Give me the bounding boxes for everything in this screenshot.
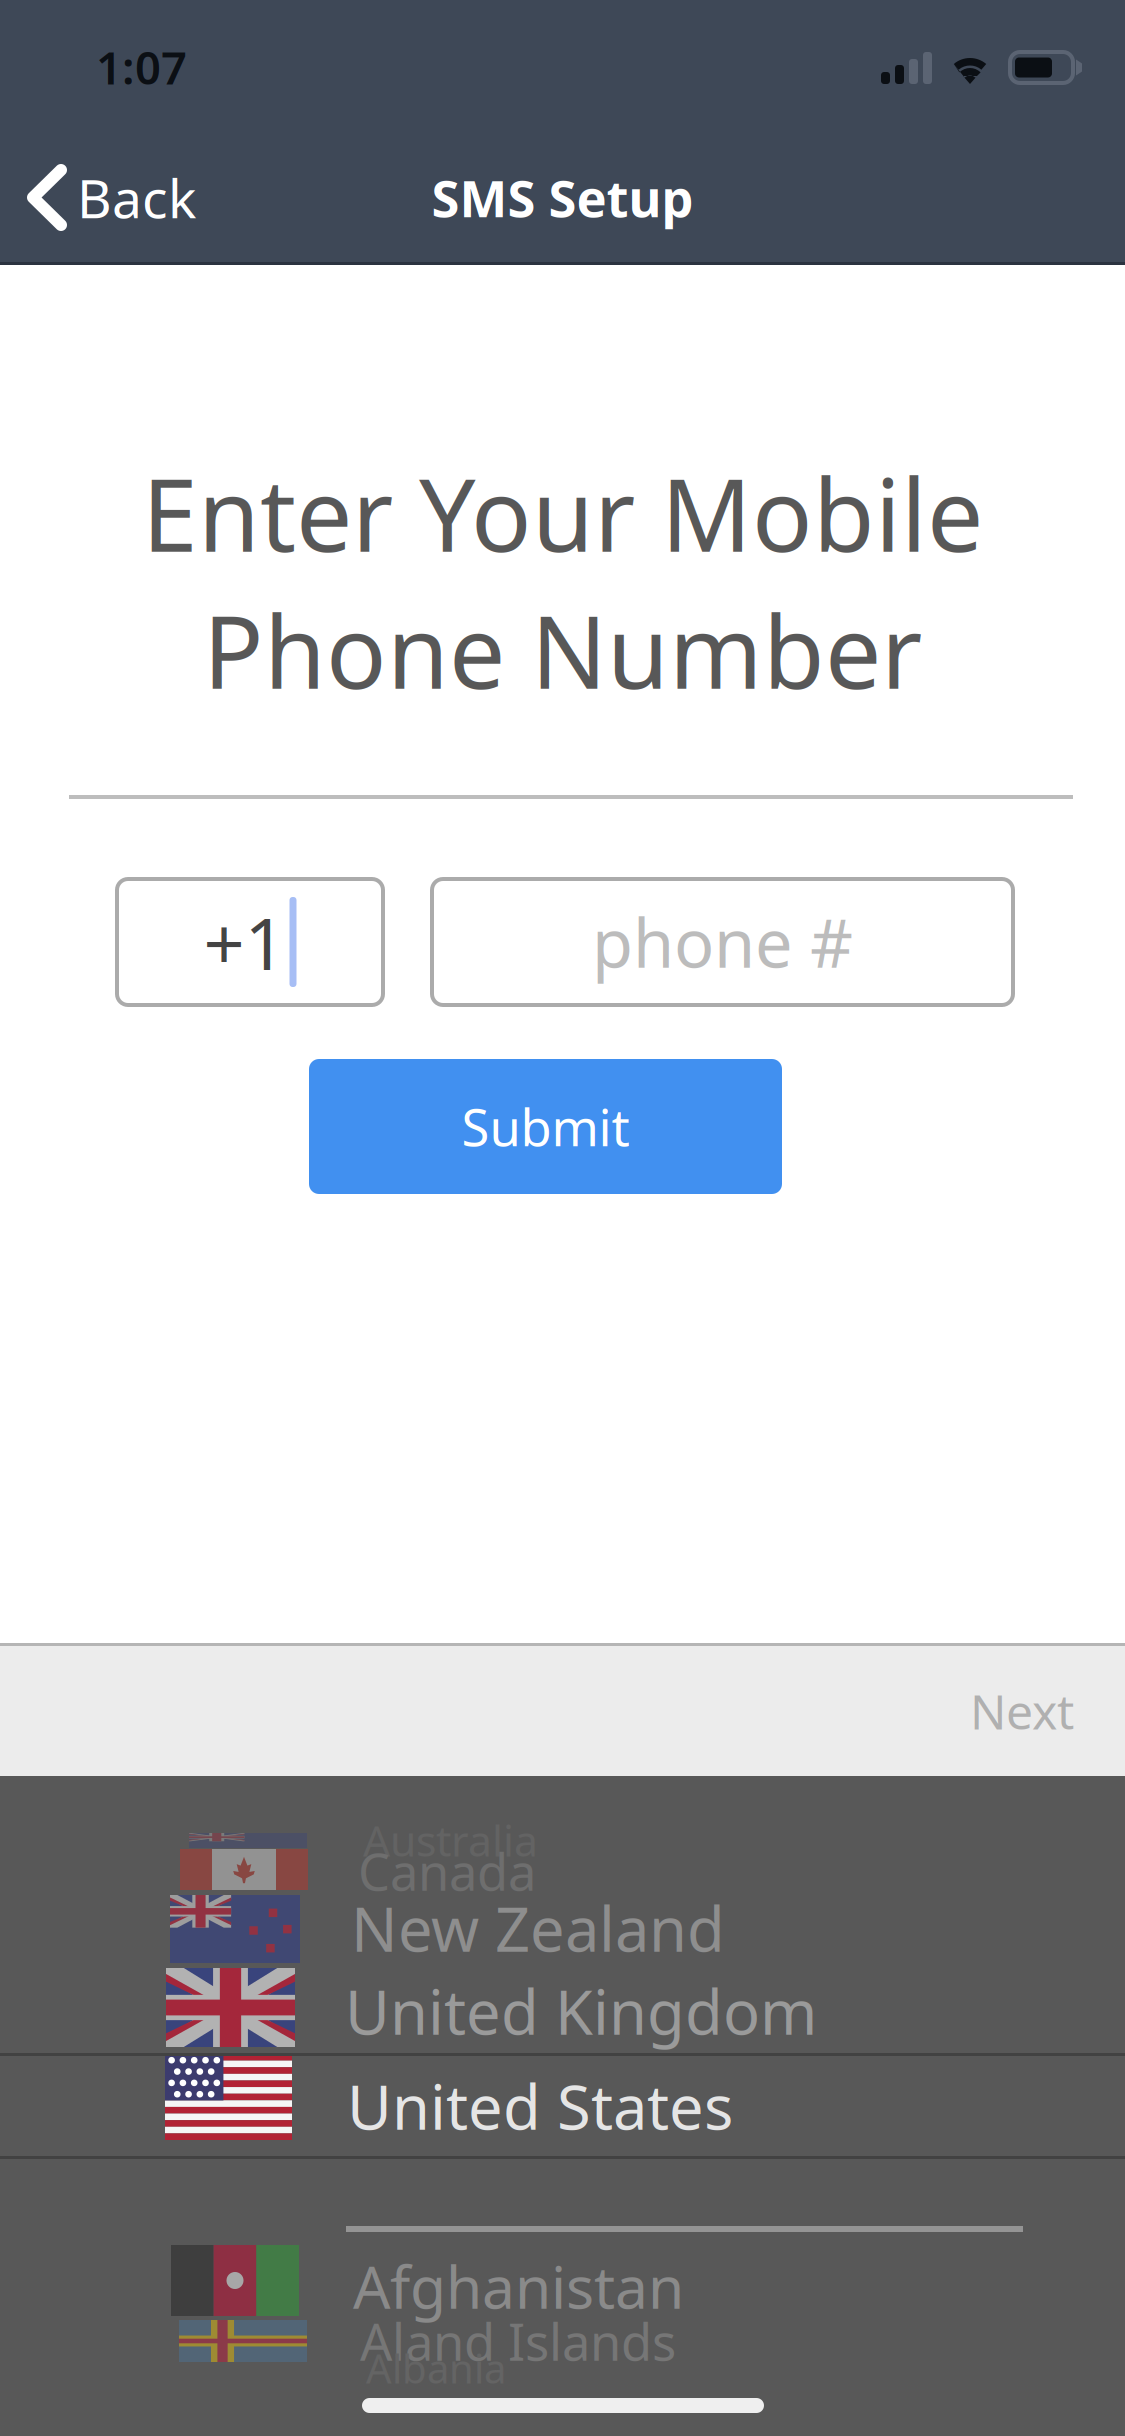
staticText: SMS Setup	[431, 164, 693, 231]
staticText: +1	[203, 894, 285, 990]
button[interactable]: Next	[874, 1646, 1125, 1776]
staticText: United Kingdom	[345, 1970, 817, 2052]
staticText: Albania	[366, 2341, 506, 2394]
staticText: Phone Number	[203, 584, 922, 716]
button[interactable]: Back	[0, 132, 224, 263]
staticText: Australia	[363, 1812, 538, 1868]
staticText: Submit	[461, 1093, 629, 1160]
staticText: Back	[77, 162, 196, 233]
staticText: New Zealand	[351, 1887, 725, 1969]
staticText: United States	[347, 2065, 733, 2147]
staticText: Aland Islands	[360, 2307, 676, 2375]
button[interactable]: Submit	[309, 1059, 782, 1194]
staticText: Enter Your Mobile	[142, 447, 983, 579]
staticText: Canada	[358, 1837, 536, 1905]
staticText: 1:07	[96, 37, 187, 97]
staticText: Next	[970, 1679, 1074, 1743]
staticText: Afghanistan	[353, 2247, 684, 2325]
staticText: phone #	[592, 898, 853, 986]
